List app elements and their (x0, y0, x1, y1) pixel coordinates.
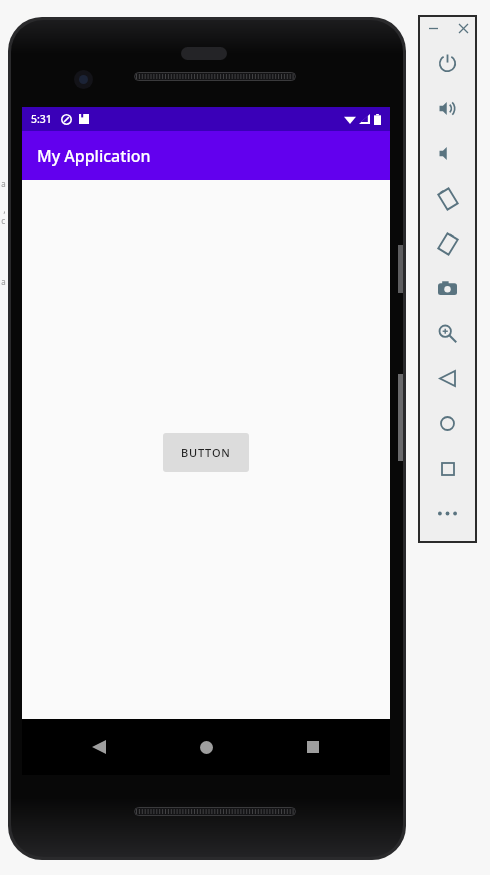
staticText: a (1, 178, 6, 189)
button[interactable]: Back (82, 730, 116, 764)
staticText: a (1, 276, 6, 287)
staticText: c (1, 215, 6, 226)
button[interactable]: Zoom (419, 311, 476, 356)
staticText: 5:31 (31, 112, 52, 126)
button[interactable]: Volume down (419, 131, 476, 176)
staticText: , (2, 204, 7, 215)
button[interactable]: Volume up (419, 86, 476, 131)
button[interactable]: Home (419, 401, 476, 446)
button[interactable]: BUTTON (163, 433, 249, 472)
button[interactable]: Rotate left (419, 176, 476, 221)
button[interactable]: Power (419, 41, 476, 86)
button[interactable]: Recent apps (296, 730, 330, 764)
staticText: My Application (37, 145, 151, 167)
button[interactable]: Close (452, 17, 474, 39)
button[interactable]: Take screenshot (419, 266, 476, 311)
button[interactable]: Minimize (422, 17, 444, 39)
button[interactable]: Back (419, 356, 476, 401)
button[interactable]: Rotate right (419, 221, 476, 266)
button[interactable]: Home (189, 730, 223, 764)
button[interactable]: Overview (419, 446, 476, 491)
staticText: BUTTON (181, 445, 231, 460)
button[interactable]: More (419, 491, 476, 536)
